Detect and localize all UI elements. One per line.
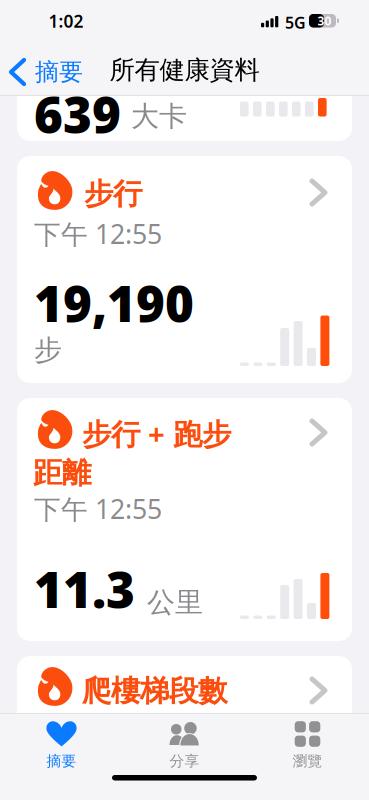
staticText: 摘要: [46, 752, 76, 770]
staticText: 大卡: [131, 99, 187, 133]
staticText: 30: [317, 13, 331, 29]
button[interactable]: 步行: [17, 156, 352, 383]
staticText: 步行: [84, 176, 142, 212]
button[interactable]: 摘要: [11, 52, 83, 92]
staticText: 下午 12:55: [34, 216, 162, 251]
staticText: 639: [34, 81, 121, 146]
staticText: 摘要: [35, 57, 83, 87]
button[interactable]: 爬樓梯段數: [17, 656, 352, 776]
staticText: 1:02: [48, 9, 83, 32]
staticText: 分享: [169, 752, 199, 770]
button[interactable]: 步行 + 跑步: [17, 398, 352, 641]
staticText: 距離: [33, 455, 91, 491]
button[interactable]: 瀏覽: [246, 718, 369, 772]
button[interactable]: 639: [17, 40, 352, 141]
staticText: 爬樓梯段數: [82, 673, 227, 709]
staticText: 步行 + 跑步: [82, 414, 231, 453]
button[interactable]: 分享: [123, 718, 246, 772]
staticText: 所有健康資料: [109, 54, 259, 85]
staticText: 5G: [285, 12, 306, 33]
staticText: 19,190: [34, 270, 194, 335]
staticText: 下午 12:55: [34, 491, 162, 526]
staticText: 瀏覽: [292, 752, 322, 770]
button[interactable]: 摘要: [0, 718, 123, 772]
staticText: 11.3: [34, 556, 135, 621]
staticText: 步: [34, 333, 62, 367]
staticText: 公里: [147, 585, 203, 619]
